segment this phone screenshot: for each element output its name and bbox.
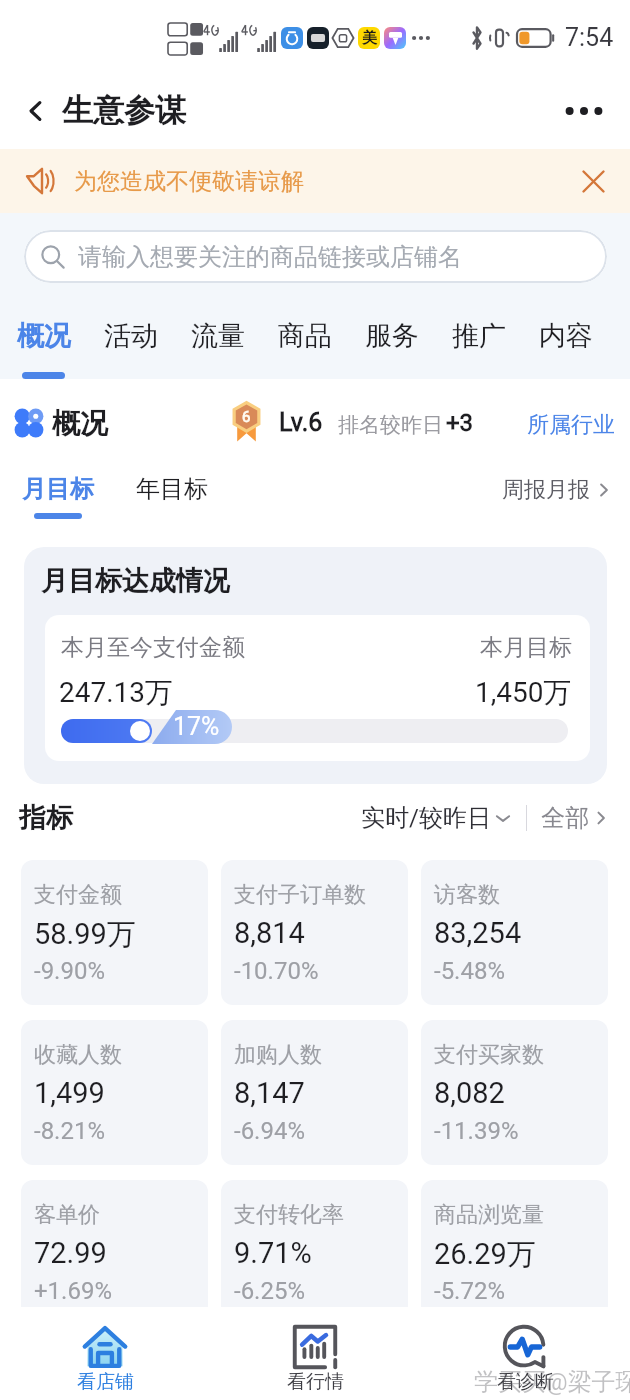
staticText: 1,499 [34,1076,105,1110]
button[interactable]: 看店铺 [0,1307,210,1400]
button[interactable]: 加购人数 [221,1020,408,1165]
staticText: 8,082 [434,1076,505,1110]
staticText: -5.72% [434,1277,506,1305]
staticText: 指标 [19,801,73,835]
staticText: 本月目标 [480,633,572,662]
button[interactable]: 年目标 [136,474,208,504]
button[interactable]: 内容 [522,309,609,379]
button[interactable]: 服务 [348,309,435,379]
button[interactable]: Back [13,89,57,133]
staticText: +3 [446,409,474,437]
staticText: 全部 [541,803,589,833]
staticText: 活动 [104,319,158,353]
staticText: 商品 [278,319,332,353]
button[interactable]: 访客数 [421,860,608,1005]
button[interactable]: 支付买家数 [421,1020,608,1165]
staticText: 看店铺 [77,1370,134,1394]
button[interactable]: 商品浏览量 [421,1180,608,1325]
staticText: 商品浏览量 [434,1201,544,1229]
staticText: 看行情 [287,1370,344,1394]
staticText: -5.48% [434,957,506,985]
button[interactable]: 周报月报 [502,476,612,504]
staticText: 本月至今支付金额 [61,633,245,662]
staticText: 支付买家数 [434,1041,544,1069]
button[interactable]: 请输入想要关注的商品链接或店铺名 [24,230,607,283]
button[interactable]: 实时/较昨日 [361,803,512,833]
button[interactable]: 概况 [0,309,87,379]
button[interactable]: 月目标 [22,474,94,519]
staticText: 收藏人数 [34,1041,122,1069]
staticText: 支付转化率 [234,1201,344,1229]
button[interactable]: 推广 [435,309,522,379]
button[interactable]: 支付转化率 [221,1180,408,1325]
staticText: -6.94% [234,1117,306,1145]
staticText: +1.69% [34,1277,112,1305]
staticText: 学买买@梁子琛 [474,1367,630,1397]
staticText: 83,254 [434,916,522,950]
button[interactable]: 活动 [87,309,174,379]
staticText: 58.99万 [34,916,136,953]
staticText: 月目标达成情况 [41,564,230,598]
staticText: 8,814 [234,916,305,950]
staticText: 6 [242,408,251,426]
button[interactable]: More options [560,87,608,135]
button[interactable]: 支付金额 [21,860,208,1005]
button[interactable]: 全部 [541,803,610,833]
button[interactable]: 商品 [261,309,348,379]
staticText: 概况 [17,319,71,353]
staticText: 排名较昨日 [338,412,443,438]
staticText: 生意参谋 [62,91,186,130]
staticText: 17% [173,712,220,741]
staticText: 周报月报 [502,476,590,504]
staticText: -10.70% [234,957,319,985]
staticText: 加购人数 [234,1041,322,1069]
staticText: 26.29万 [434,1236,536,1273]
staticText: 访客数 [434,881,500,909]
button[interactable]: 客单价 [21,1180,208,1325]
staticText: 客单价 [34,1201,100,1229]
button[interactable]: 收藏人数 [21,1020,208,1165]
staticText: 9.71% [234,1236,312,1270]
staticText: 美 [362,29,377,48]
staticText: 7:54 [565,23,614,52]
staticText: 支付子订单数 [234,881,366,909]
staticText: 流量 [191,319,245,353]
staticText: 1,450万 [475,675,572,710]
button[interactable]: 所属行业 [527,411,615,439]
staticText: 概况 [52,406,108,441]
staticText: 看诊断 [497,1370,554,1394]
staticText: 实时/较昨日 [361,803,491,833]
staticText: 支付金额 [34,881,122,909]
staticText: 内容 [539,319,593,353]
button[interactable]: Dismiss [571,159,615,203]
staticText: -11.39% [434,1117,519,1145]
staticText: 月目标 [22,474,94,504]
staticText: -6.25% [234,1277,306,1305]
staticText: 请输入想要关注的商品链接或店铺名 [78,242,462,272]
staticText: 247.13万 [59,675,174,710]
button[interactable]: 流量 [174,309,261,379]
staticText: 推广 [452,319,506,353]
staticText: -9.90% [34,957,106,985]
staticText: Lv.6 [279,408,323,437]
button[interactable]: 看行情 [210,1307,420,1400]
button[interactable]: 看诊断 [420,1307,630,1400]
staticText: 服务 [365,319,419,353]
button[interactable]: 支付子订单数 [221,860,408,1005]
staticText: 72.99 [34,1236,107,1270]
staticText: 8,147 [234,1076,305,1110]
staticText: 为您造成不便敬请谅解 [74,167,304,196]
button[interactable]: 月目标达成情况 [24,547,607,784]
staticText: -8.21% [34,1117,106,1145]
